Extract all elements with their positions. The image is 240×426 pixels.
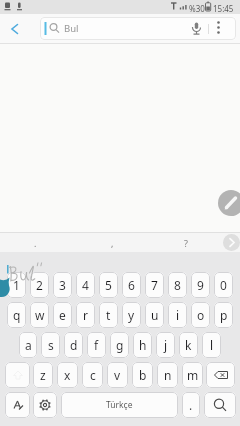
staticText: j — [164, 337, 168, 353]
staticText: 0 — [220, 277, 227, 293]
staticText: v — [114, 367, 121, 383]
button[interactable]: g — [110, 332, 129, 358]
staticText: ? — [184, 237, 188, 249]
button[interactable] — [5, 392, 30, 418]
button[interactable]: t — [99, 302, 118, 328]
button[interactable]: 0 — [214, 272, 233, 298]
button[interactable]: m — [182, 362, 203, 388]
button[interactable]: . — [182, 392, 200, 418]
staticText: m — [187, 367, 199, 383]
button[interactable] — [212, 17, 234, 40]
button[interactable] — [223, 234, 240, 251]
staticText: p — [220, 307, 228, 323]
button[interactable]: , — [89, 233, 135, 252]
button[interactable]: v — [107, 362, 128, 388]
staticText: h — [139, 337, 147, 353]
button[interactable]: 5 — [99, 272, 118, 298]
staticText: k — [185, 337, 192, 353]
button[interactable]: k — [179, 332, 198, 358]
button[interactable]: 2 — [30, 272, 49, 298]
staticText: . — [34, 237, 37, 249]
staticText: i — [176, 307, 180, 323]
button[interactable]: 7 — [145, 272, 164, 298]
button[interactable]: i — [168, 302, 187, 328]
button[interactable]: Bul — [40, 17, 236, 40]
staticText: s — [48, 337, 54, 353]
button[interactable]: p — [214, 302, 233, 328]
button[interactable]: f — [87, 332, 106, 358]
staticText: c — [90, 367, 96, 383]
staticText: Türkçe — [106, 399, 133, 411]
button[interactable]: n — [157, 362, 178, 388]
button[interactable]: j — [156, 332, 175, 358]
button[interactable]: d — [64, 332, 83, 358]
staticText: b — [139, 367, 147, 383]
button[interactable]: 9 — [191, 272, 210, 298]
staticText: 7 — [151, 277, 158, 293]
button[interactable]: h — [133, 332, 152, 358]
staticText: o — [197, 307, 205, 323]
button[interactable]: c — [82, 362, 103, 388]
button[interactable] — [218, 190, 240, 216]
staticText: 3 — [59, 277, 66, 293]
button[interactable]: Türkçe — [61, 392, 178, 418]
button[interactable]: q — [7, 302, 26, 328]
staticText: 6 — [128, 277, 135, 293]
button[interactable]: ? — [163, 233, 209, 252]
staticText: w — [35, 307, 45, 323]
button[interactable]: l — [202, 332, 221, 358]
button[interactable]: 3 — [53, 272, 72, 298]
button[interactable]: e — [53, 302, 72, 328]
staticText: 4 — [82, 277, 89, 293]
staticText: n — [164, 367, 172, 383]
staticText: g — [116, 337, 124, 353]
button[interactable]: 8 — [168, 272, 187, 298]
button[interactable] — [188, 20, 205, 37]
button[interactable]: r — [76, 302, 95, 328]
button[interactable] — [6, 20, 24, 38]
staticText: 9 — [197, 277, 204, 293]
staticText: Bul — [64, 22, 79, 35]
staticText: a — [25, 337, 32, 353]
staticText: d — [70, 337, 78, 353]
button[interactable]: s — [41, 332, 60, 358]
staticText: . — [189, 397, 193, 413]
button[interactable] — [204, 392, 236, 418]
staticText: 1 — [13, 277, 20, 293]
staticText: t — [106, 307, 111, 323]
button[interactable]: x — [57, 362, 78, 388]
button[interactable]: u — [145, 302, 164, 328]
staticText: , — [111, 237, 114, 249]
staticText: y — [128, 307, 135, 323]
staticText: f — [94, 337, 99, 353]
button[interactable]: a — [19, 332, 37, 358]
staticText: e — [59, 307, 66, 323]
staticText: 15:45 — [213, 3, 234, 14]
button[interactable]: z — [33, 362, 53, 388]
button[interactable]: w — [30, 302, 49, 328]
button[interactable] — [5, 362, 30, 388]
button[interactable]: 6 — [122, 272, 141, 298]
button[interactable]: y — [122, 302, 141, 328]
staticText: u — [151, 307, 159, 323]
staticText: %30 — [189, 3, 205, 14]
button[interactable]: o — [191, 302, 210, 328]
staticText: q — [13, 307, 21, 323]
staticText: x — [64, 367, 71, 383]
button[interactable]: b — [132, 362, 153, 388]
staticText: r — [83, 307, 88, 323]
staticText: z — [40, 367, 46, 383]
staticText: 2 — [36, 277, 43, 293]
staticText: l — [210, 337, 214, 353]
button[interactable] — [206, 362, 235, 388]
staticText: 5 — [105, 277, 112, 293]
staticText: 8 — [174, 277, 181, 293]
button[interactable] — [33, 392, 57, 418]
button[interactable]: 1 — [7, 272, 26, 298]
button[interactable]: 4 — [76, 272, 95, 298]
